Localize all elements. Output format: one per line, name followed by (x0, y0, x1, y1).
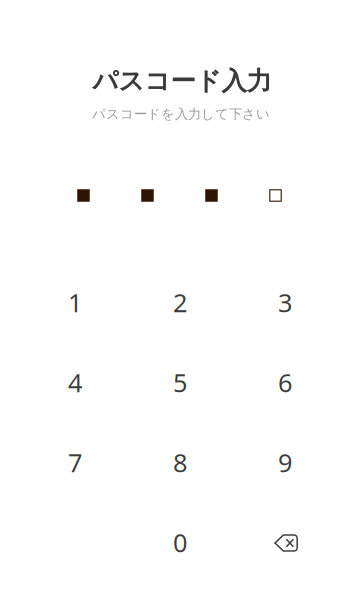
button[interactable]: 0 (127, 502, 232, 582)
button[interactable]: Delete (234, 503, 339, 583)
staticText: 1 (68, 286, 82, 319)
button[interactable]: 9 (232, 422, 337, 502)
staticText: 4 (68, 366, 82, 399)
staticText: 5 (173, 366, 187, 399)
staticText: 8 (173, 446, 187, 479)
button[interactable]: 2 (127, 262, 232, 342)
staticText: 7 (68, 446, 82, 479)
staticText: 3 (278, 286, 292, 319)
button[interactable]: 7 (22, 422, 127, 502)
staticText: 9 (278, 446, 292, 479)
staticText: 6 (278, 366, 292, 399)
button[interactable]: 6 (232, 342, 337, 422)
button[interactable]: 4 (22, 342, 127, 422)
button[interactable]: 5 (127, 342, 232, 422)
button[interactable]: 1 (22, 262, 127, 342)
button[interactable]: 3 (232, 262, 337, 342)
staticText: 2 (173, 286, 187, 319)
staticText: 0 (173, 526, 187, 559)
button[interactable]: 8 (127, 422, 232, 502)
staticText: パスコード入力 (92, 65, 271, 96)
staticText: パスコードを入力して下さい (92, 106, 270, 122)
